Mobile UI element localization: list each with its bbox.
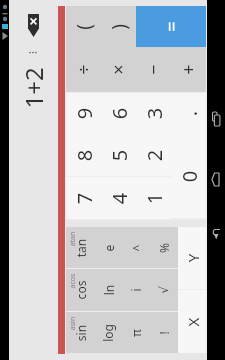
button[interactable]: π: [122, 312, 150, 353]
staticText: ln: [100, 284, 116, 295]
button[interactable]: Y: [178, 227, 206, 289]
button[interactable]: Recent apps: [207, 106, 225, 132]
staticText: %: [156, 243, 172, 253]
button[interactable]: 0: [171, 134, 206, 218]
staticText: log: [100, 324, 116, 342]
staticText: Y: [182, 253, 202, 262]
button[interactable]: −: [136, 47, 171, 92]
button[interactable]: 3: [136, 93, 171, 134]
button[interactable]: !: [150, 312, 178, 353]
staticText: 7: [70, 192, 97, 204]
button[interactable]: e: [94, 227, 122, 268]
button[interactable]: Delete: [22, 6, 44, 44]
button[interactable]: tan: [66, 227, 94, 268]
staticText: 2: [140, 149, 167, 161]
button[interactable]: (: [66, 6, 101, 47]
staticText: √: [157, 286, 171, 294]
staticText: i: [128, 288, 144, 292]
staticText: π: [128, 329, 144, 337]
staticText: 5: [105, 149, 132, 161]
button[interactable]: ): [101, 6, 136, 47]
button[interactable]: ÷: [66, 47, 101, 92]
staticText: ^: [128, 244, 144, 251]
button[interactable]: +: [171, 47, 206, 92]
staticText: .: [175, 110, 202, 116]
button[interactable]: More options: [22, 44, 44, 60]
staticText: X: [182, 317, 202, 326]
staticText: 0: [175, 170, 202, 182]
button[interactable]: 9: [66, 93, 101, 134]
button[interactable]: X: [178, 290, 206, 353]
button[interactable]: %: [150, 227, 178, 268]
button[interactable]: .: [171, 93, 206, 134]
button[interactable]: √: [150, 269, 178, 311]
button[interactable]: Back: [207, 220, 225, 248]
staticText: atan: [67, 231, 77, 246]
staticText: 6: [105, 107, 132, 119]
staticText: acos: [67, 273, 77, 288]
staticText: e: [100, 244, 116, 251]
staticText: +: [176, 64, 201, 75]
button[interactable]: 1: [136, 177, 171, 219]
staticText: !: [156, 331, 172, 335]
staticText: 4: [105, 192, 132, 204]
button[interactable]: cos: [66, 269, 94, 311]
staticText: 8: [70, 149, 97, 161]
button[interactable]: ln: [94, 269, 122, 311]
staticText: sin: [72, 324, 88, 341]
button[interactable]: ^: [122, 227, 150, 268]
staticText: asin: [67, 316, 77, 330]
staticText: −: [141, 64, 166, 75]
staticText: (: [71, 24, 97, 30]
staticText: 3: [140, 107, 167, 119]
button[interactable]: 7: [66, 177, 101, 219]
button[interactable]: ×: [101, 47, 136, 92]
staticText: tan: [72, 238, 88, 257]
button[interactable]: 2: [136, 134, 171, 176]
staticText: 1+2: [16, 66, 49, 108]
staticText: ×: [106, 64, 131, 75]
button[interactable]: i: [122, 269, 150, 311]
button[interactable]: 5: [101, 134, 136, 176]
button[interactable]: log: [94, 312, 122, 353]
staticText: ): [106, 24, 132, 30]
button[interactable]: 8: [66, 134, 101, 176]
button[interactable]: =: [136, 6, 206, 47]
button[interactable]: 4: [101, 177, 136, 219]
button[interactable]: 6: [101, 93, 136, 134]
staticText: 9: [70, 107, 97, 119]
button[interactable]: Home: [207, 166, 225, 192]
staticText: ÷: [71, 64, 96, 75]
staticText: cos: [72, 280, 88, 299]
staticText: 1: [140, 192, 167, 204]
button[interactable]: sin: [66, 312, 94, 353]
staticText: =: [159, 21, 184, 32]
